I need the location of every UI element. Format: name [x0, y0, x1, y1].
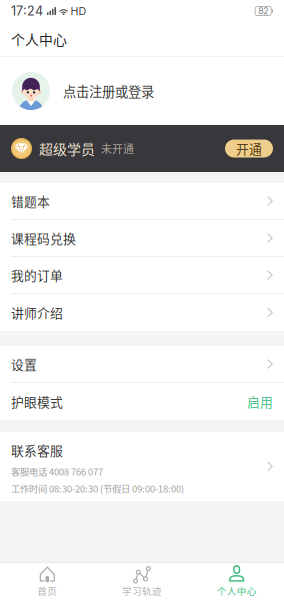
staticText: 个人中心	[11, 29, 67, 49]
staticText: 82	[258, 6, 268, 16]
button[interactable]: 点击注册或登录	[0, 57, 284, 125]
button[interactable]: 个人中心	[189, 563, 284, 600]
button[interactable]: 我的订单	[0, 257, 284, 294]
staticText: 超级学员	[39, 138, 95, 159]
button[interactable]: 开通	[225, 139, 273, 157]
staticText: 设置	[11, 355, 37, 373]
button[interactable]: 护眼模式	[0, 383, 284, 420]
button[interactable]: 首页	[0, 563, 95, 600]
button[interactable]: 课程码兑换	[0, 220, 284, 257]
button[interactable]: 错题本	[0, 183, 284, 220]
staticText: 学习轨迹	[122, 583, 162, 597]
staticText: 课程码兑换	[11, 229, 76, 247]
staticText: 客服电话 4008 766 077	[11, 465, 103, 478]
staticText: 首页	[37, 583, 57, 597]
staticText: 点击注册或登录	[63, 81, 154, 101]
staticText: 启用	[247, 392, 273, 411]
staticText: 错题本	[11, 192, 50, 210]
button[interactable]: 讲师介绍	[0, 294, 284, 331]
staticText: 开通	[236, 139, 262, 158]
button[interactable]: 学习轨迹	[95, 563, 189, 600]
staticText: 护眼模式	[11, 392, 63, 411]
staticText: 未开通	[101, 141, 134, 156]
staticText: 个人中心	[217, 583, 257, 597]
staticText: 联系客服	[11, 441, 63, 459]
staticText: HD	[70, 4, 86, 17]
button[interactable]: 联系客服	[0, 432, 284, 501]
staticText: 工作时间 08:30-20:30 (节假日 09:00-18:00)	[11, 482, 184, 495]
button[interactable]: 设置	[0, 346, 284, 383]
staticText: 讲师介绍	[11, 303, 63, 322]
staticText: 我的订单	[11, 266, 63, 284]
staticText: 17:24	[11, 3, 43, 19]
